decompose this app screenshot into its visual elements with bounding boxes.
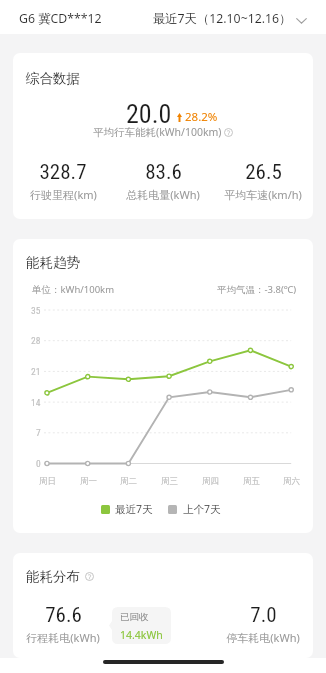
staticText: 停车耗电(kWh) [226,630,300,645]
staticText: 周日 [39,476,56,487]
staticText: 已回收 [120,611,149,623]
staticText: 7.0 [250,603,277,628]
staticText: 0 [36,458,41,469]
staticText: 周六 [283,476,300,487]
button[interactable]: 最近7天（12.10~12.16） [153,10,307,27]
staticText: 行程耗电(kWh) [26,630,100,645]
staticText: G6 冀CD***12 [19,10,102,27]
staticText: 周二 [120,476,137,487]
staticText: 周四 [202,476,219,487]
staticText: 7 [36,427,41,438]
staticText: 周三 [161,476,178,487]
staticText: 76.6 [45,603,82,628]
staticText: 35 [31,305,41,316]
staticText: 平均车速(km/h) [224,187,302,202]
staticText: 28.2% [185,109,218,125]
staticText: 26.5 [245,160,282,185]
staticText: 20.0 [126,99,172,129]
staticText: 平均行车能耗(kWh/100km) [93,125,222,139]
staticText: 平均气温：-3.8(℃) [217,283,297,296]
staticText: 上个7天 [183,502,221,516]
staticText: 328.7 [39,160,87,185]
staticText: 单位：kWh/100km [32,283,115,296]
staticText: 总耗电量(kWh) [126,187,200,202]
staticText: 最近7天 [115,502,153,516]
staticText: 28 [31,335,41,346]
staticText: 83.6 [145,160,182,185]
staticText: 能耗趋势 [26,254,80,271]
staticText: 14.4kWh [120,628,163,642]
staticText: 最近7天（12.10~12.16） [153,10,292,27]
button[interactable]: G6 冀CD***12 [19,10,102,27]
staticText: 行驶里程(km) [30,187,97,202]
staticText: 21 [31,366,41,377]
staticText: 能耗分布 [26,568,80,585]
staticText: 综合数据 [26,70,80,87]
staticText: 14 [31,397,41,408]
staticText: 周一 [80,476,97,487]
staticText: 周五 [243,476,260,487]
